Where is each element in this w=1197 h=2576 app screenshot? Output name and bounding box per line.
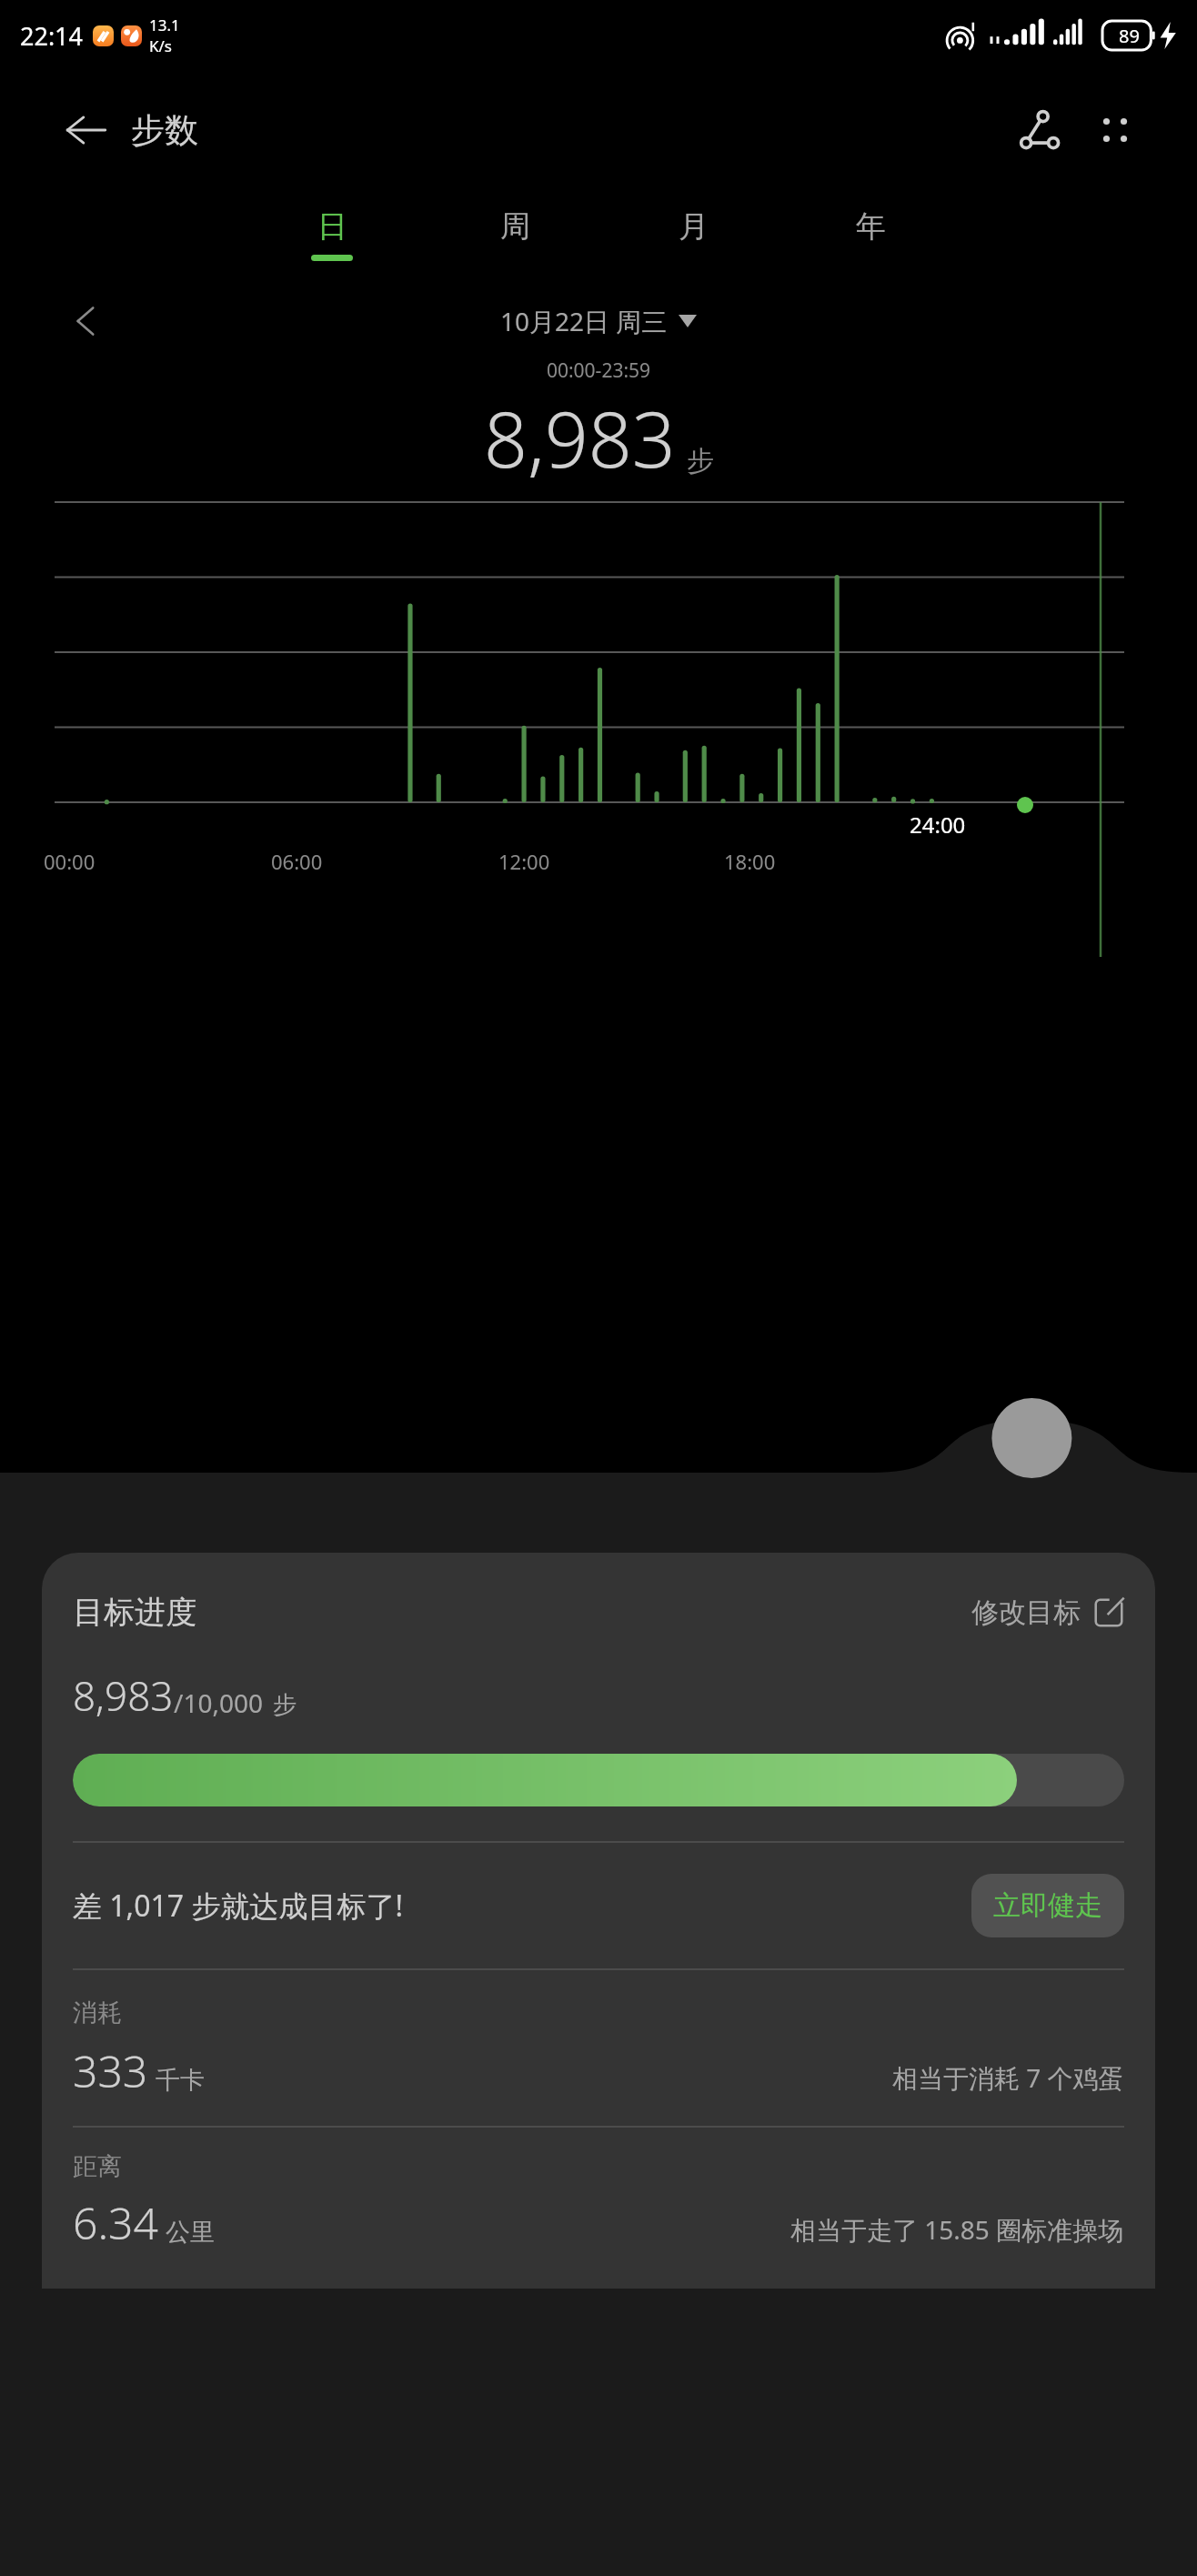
staticText: 22:14 [20, 19, 84, 53]
button[interactable]: 10月22日 周三 [500, 304, 697, 338]
staticText: 12:00 [498, 848, 550, 875]
other: Back [64, 106, 111, 154]
staticText: 18:00 [724, 848, 776, 875]
staticText: 公里 [166, 2217, 215, 2248]
button[interactable]: 日 [300, 204, 364, 265]
button[interactable]: 月 [668, 204, 719, 265]
staticText: 8,983 [73, 1668, 174, 1723]
staticText: 年 [856, 207, 886, 246]
staticText: 13.1 [149, 15, 180, 35]
staticText: 6.34 [73, 2193, 158, 2252]
staticText: 立即健走 [993, 1888, 1102, 1923]
staticText: 日 [317, 207, 347, 246]
button[interactable]: 周 [489, 204, 541, 265]
staticText: 距离 [73, 2151, 122, 2182]
button[interactable]: More options [1086, 101, 1144, 159]
button[interactable]: Back [64, 106, 198, 154]
staticText: 00:00-23:59 [0, 357, 1197, 384]
button[interactable]: 立即健走 [971, 1874, 1124, 1937]
staticText: 周 [500, 207, 530, 246]
staticText: 8,983 [484, 386, 676, 489]
staticText: 步 [687, 444, 714, 478]
staticText: 10月22日 周三 [500, 304, 668, 338]
staticText: 步 [273, 1690, 297, 1720]
staticText: 24:00 [910, 810, 966, 840]
button[interactable]: Share [1011, 101, 1070, 159]
staticText: 目标进度 [73, 1593, 196, 1632]
staticText: 修改目标 [971, 1595, 1081, 1630]
staticText: K/s [149, 35, 172, 56]
staticText: /10,000 [174, 1685, 264, 1720]
staticText: 相当于走了 15.85 圈标准操场 [790, 2212, 1124, 2247]
staticText: 333 [73, 2041, 148, 2100]
button[interactable]: Previous day [64, 297, 111, 345]
staticText: 消耗 [73, 1997, 122, 2028]
staticText: 月 [679, 207, 709, 246]
button[interactable]: 修改目标 [971, 1595, 1124, 1630]
staticText: 步数 [131, 109, 198, 152]
staticText: 相当于消耗 7 个鸡蛋 [892, 2060, 1124, 2095]
staticText: 差 1,017 步就达成目标了! [73, 1886, 404, 1926]
staticText: 00:00 [44, 848, 96, 875]
staticText: 89 [1119, 24, 1140, 48]
button[interactable]: 年 [845, 204, 897, 265]
staticText: 千卡 [156, 2065, 205, 2096]
staticText: 06:00 [271, 848, 323, 875]
